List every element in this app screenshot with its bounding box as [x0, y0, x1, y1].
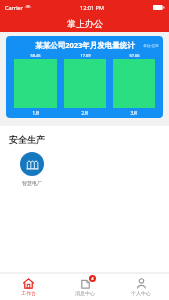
- staticText: 17.69: [80, 53, 91, 58]
- staticText: 某某公司2023年月发电量统计: [35, 40, 135, 50]
- staticText: 掌上办公: [67, 18, 103, 29]
- button[interactable]: 工作台: [0, 273, 57, 300]
- staticText: 58.45: [30, 53, 41, 58]
- staticText: 安全生产: [9, 134, 45, 145]
- staticText: 2月: [81, 110, 89, 116]
- staticText: 1月: [32, 110, 40, 116]
- staticText: Carrier: [5, 4, 23, 11]
- staticText: 工作台: [21, 290, 36, 296]
- staticText: 12:01 PM: [80, 4, 104, 11]
- other: 智慧电厂: [20, 152, 44, 176]
- staticText: 个人中心: [131, 290, 151, 296]
- staticText: 智慧电厂: [22, 180, 42, 186]
- staticText: 4: [91, 276, 94, 281]
- button[interactable]: 某某公司2023年月发电量统计: [6, 36, 163, 118]
- staticText: 消息中心: [75, 290, 95, 296]
- button[interactable]: 4: [57, 273, 113, 300]
- button[interactable]: 个人中心: [113, 273, 169, 300]
- staticText: 3月: [130, 110, 138, 116]
- staticText: 单位:亿度: [143, 43, 159, 48]
- button[interactable]: 智慧电厂: [13, 152, 51, 186]
- staticText: 57.66: [129, 53, 140, 58]
